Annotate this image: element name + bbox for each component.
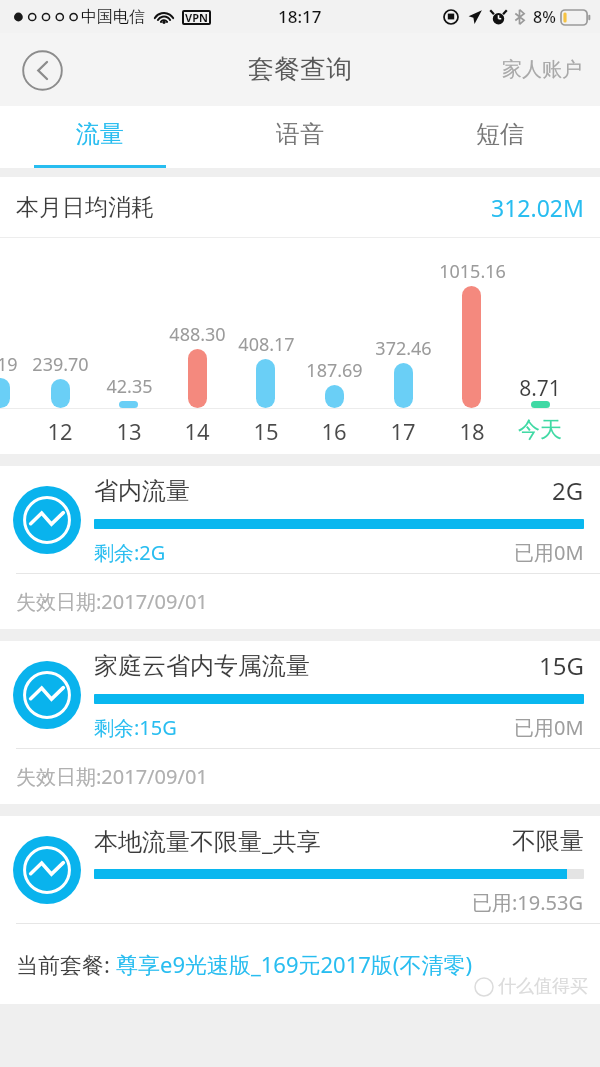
staticText: 剩余:15G <box>94 714 177 741</box>
staticText: 当前套餐: <box>16 949 116 979</box>
staticText: 18 <box>459 416 485 446</box>
staticText: 8.71 <box>519 374 561 403</box>
staticText: 尊享e9光速版_169元2017版(不清零) <box>116 949 473 979</box>
staticText: 187.69 <box>306 358 363 383</box>
staticText: 家人账户 <box>502 57 582 82</box>
staticText: 15G <box>539 649 584 682</box>
staticText: VPN <box>185 10 208 25</box>
staticText: 今天 <box>518 416 562 444</box>
staticText: 13 <box>116 416 142 446</box>
staticText: 18:17 <box>278 5 322 28</box>
staticText: 省内流量 <box>94 476 552 506</box>
staticText: 488.30 <box>169 322 226 347</box>
button[interactable]: Back <box>19 47 65 93</box>
staticText: 16 <box>321 416 347 446</box>
staticText: 12 <box>47 416 73 446</box>
staticText: 失效日期:2017/09/01 <box>16 763 208 790</box>
staticText: 1015.16 <box>439 259 506 284</box>
staticText: 什么值得买 <box>498 975 588 998</box>
button[interactable]: 家庭云省内专属流量 <box>0 641 600 804</box>
button[interactable]: 语音 <box>200 106 400 168</box>
staticText: 2G <box>552 474 584 507</box>
staticText: 本地流量不限量_共享 <box>94 824 512 857</box>
staticText: 不限量 <box>512 826 584 856</box>
button[interactable]: 省内流量 <box>0 466 600 629</box>
button[interactable]: 家人账户 <box>498 47 586 92</box>
staticText: 42.35 <box>106 374 153 399</box>
staticText: 已用0M <box>514 539 584 566</box>
staticText: 套餐查询 <box>248 53 352 86</box>
staticText: 剩余:2G <box>94 539 166 566</box>
staticText: 家庭云省内专属流量 <box>94 651 539 681</box>
staticText: 中国电信 <box>81 7 145 27</box>
staticText: 15 <box>253 416 279 446</box>
staticText: 流量 <box>76 119 124 149</box>
button[interactable]: 短信 <box>400 106 600 168</box>
staticText: 语音 <box>276 119 324 149</box>
staticText: 失效日期:2017/09/01 <box>16 588 208 615</box>
staticText: 19 <box>0 352 18 377</box>
staticText: 本月日均消耗 <box>16 193 154 222</box>
staticText: 8% <box>533 6 556 28</box>
button[interactable]: 流量 <box>0 106 200 168</box>
staticText: 239.70 <box>32 352 89 377</box>
staticText: 已用:19.53G <box>472 889 584 916</box>
staticText: 已用0M <box>514 714 584 741</box>
staticText: 14 <box>184 416 210 446</box>
button[interactable]: 本地流量不限量_共享 <box>0 816 600 924</box>
staticText: 372.46 <box>375 336 432 361</box>
staticText: 17 <box>390 416 416 446</box>
button[interactable]: 当前套餐: <box>16 949 473 979</box>
staticText: 312.02M <box>491 192 584 223</box>
staticText: 408.17 <box>238 332 295 357</box>
staticText: 短信 <box>476 119 524 149</box>
